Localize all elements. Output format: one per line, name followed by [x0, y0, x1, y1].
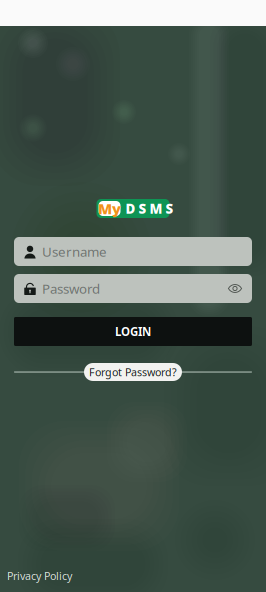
- button[interactable]: Forgot Password?: [84, 363, 182, 381]
- button[interactable]: Privacy Policy: [7, 569, 72, 583]
- staticText: Username: [42, 243, 107, 260]
- staticText: My: [98, 199, 121, 218]
- staticText: D S M S: [125, 200, 173, 217]
- button[interactable]: LOGIN: [14, 317, 252, 346]
- staticText: Forgot Password?: [89, 365, 177, 379]
- staticText: Privacy Policy: [7, 569, 72, 583]
- staticText: Password: [42, 280, 100, 297]
- staticText: LOGIN: [115, 324, 151, 339]
